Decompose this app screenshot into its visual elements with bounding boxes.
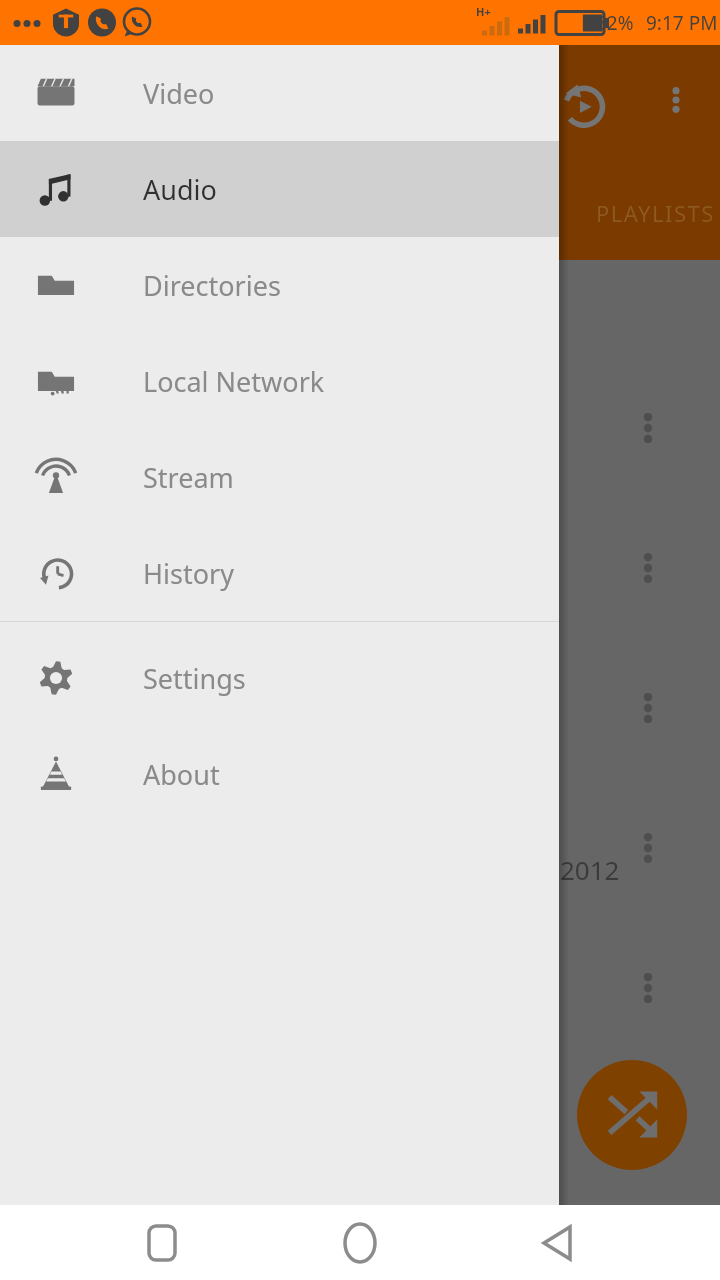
button[interactable]: Home (324, 1207, 396, 1279)
button[interactable]: Local Network (0, 333, 559, 429)
staticText: Stream (143, 459, 234, 496)
staticText: History (143, 555, 234, 592)
staticText: H+ (476, 4, 491, 19)
staticText: PLAYLISTS (596, 198, 715, 228)
button[interactable]: Item options (628, 400, 668, 456)
button[interactable]: Audio (0, 141, 559, 237)
button[interactable]: About (0, 726, 559, 822)
button[interactable]: History (0, 525, 559, 621)
button[interactable]: Resume playback (556, 76, 612, 132)
button[interactable]: Stream (0, 429, 559, 525)
button[interactable]: Video (0, 45, 559, 141)
staticText: Video (143, 75, 215, 112)
button[interactable]: Item options (628, 820, 668, 876)
button[interactable]: Shuffle (577, 1060, 687, 1170)
staticText: Local Network (143, 363, 325, 400)
button[interactable]: Item options (628, 680, 668, 736)
button[interactable]: More options (654, 78, 698, 122)
staticText: 9:17 PM (646, 10, 718, 36)
staticText: Settings (143, 660, 246, 697)
button[interactable]: Recent apps (126, 1207, 198, 1279)
button[interactable]: Back (522, 1207, 594, 1279)
staticText: About (143, 756, 220, 793)
button[interactable]: Item options (628, 960, 668, 1016)
staticText: Audio (143, 171, 217, 208)
button[interactable]: Directories (0, 237, 559, 333)
staticText: 2012 (560, 852, 620, 887)
staticText: 32% (596, 10, 634, 36)
button[interactable]: Item options (628, 540, 668, 596)
button[interactable]: Settings (0, 630, 559, 726)
staticText: Directories (143, 267, 281, 304)
